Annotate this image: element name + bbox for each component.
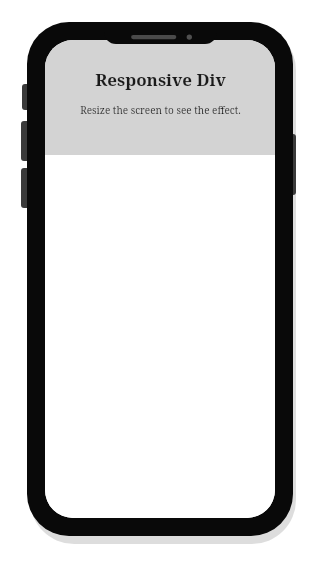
button[interactable]: Responsive Div	[45, 40, 275, 155]
button[interactable]: Silent mode switch	[22, 84, 29, 110]
button[interactable]: Volume down	[21, 168, 29, 208]
staticText: Resize the screen to see the effect.	[80, 103, 241, 117]
button[interactable]: Volume up	[21, 121, 29, 161]
staticText: Responsive Div	[95, 68, 226, 91]
button[interactable]: Power	[289, 134, 296, 195]
